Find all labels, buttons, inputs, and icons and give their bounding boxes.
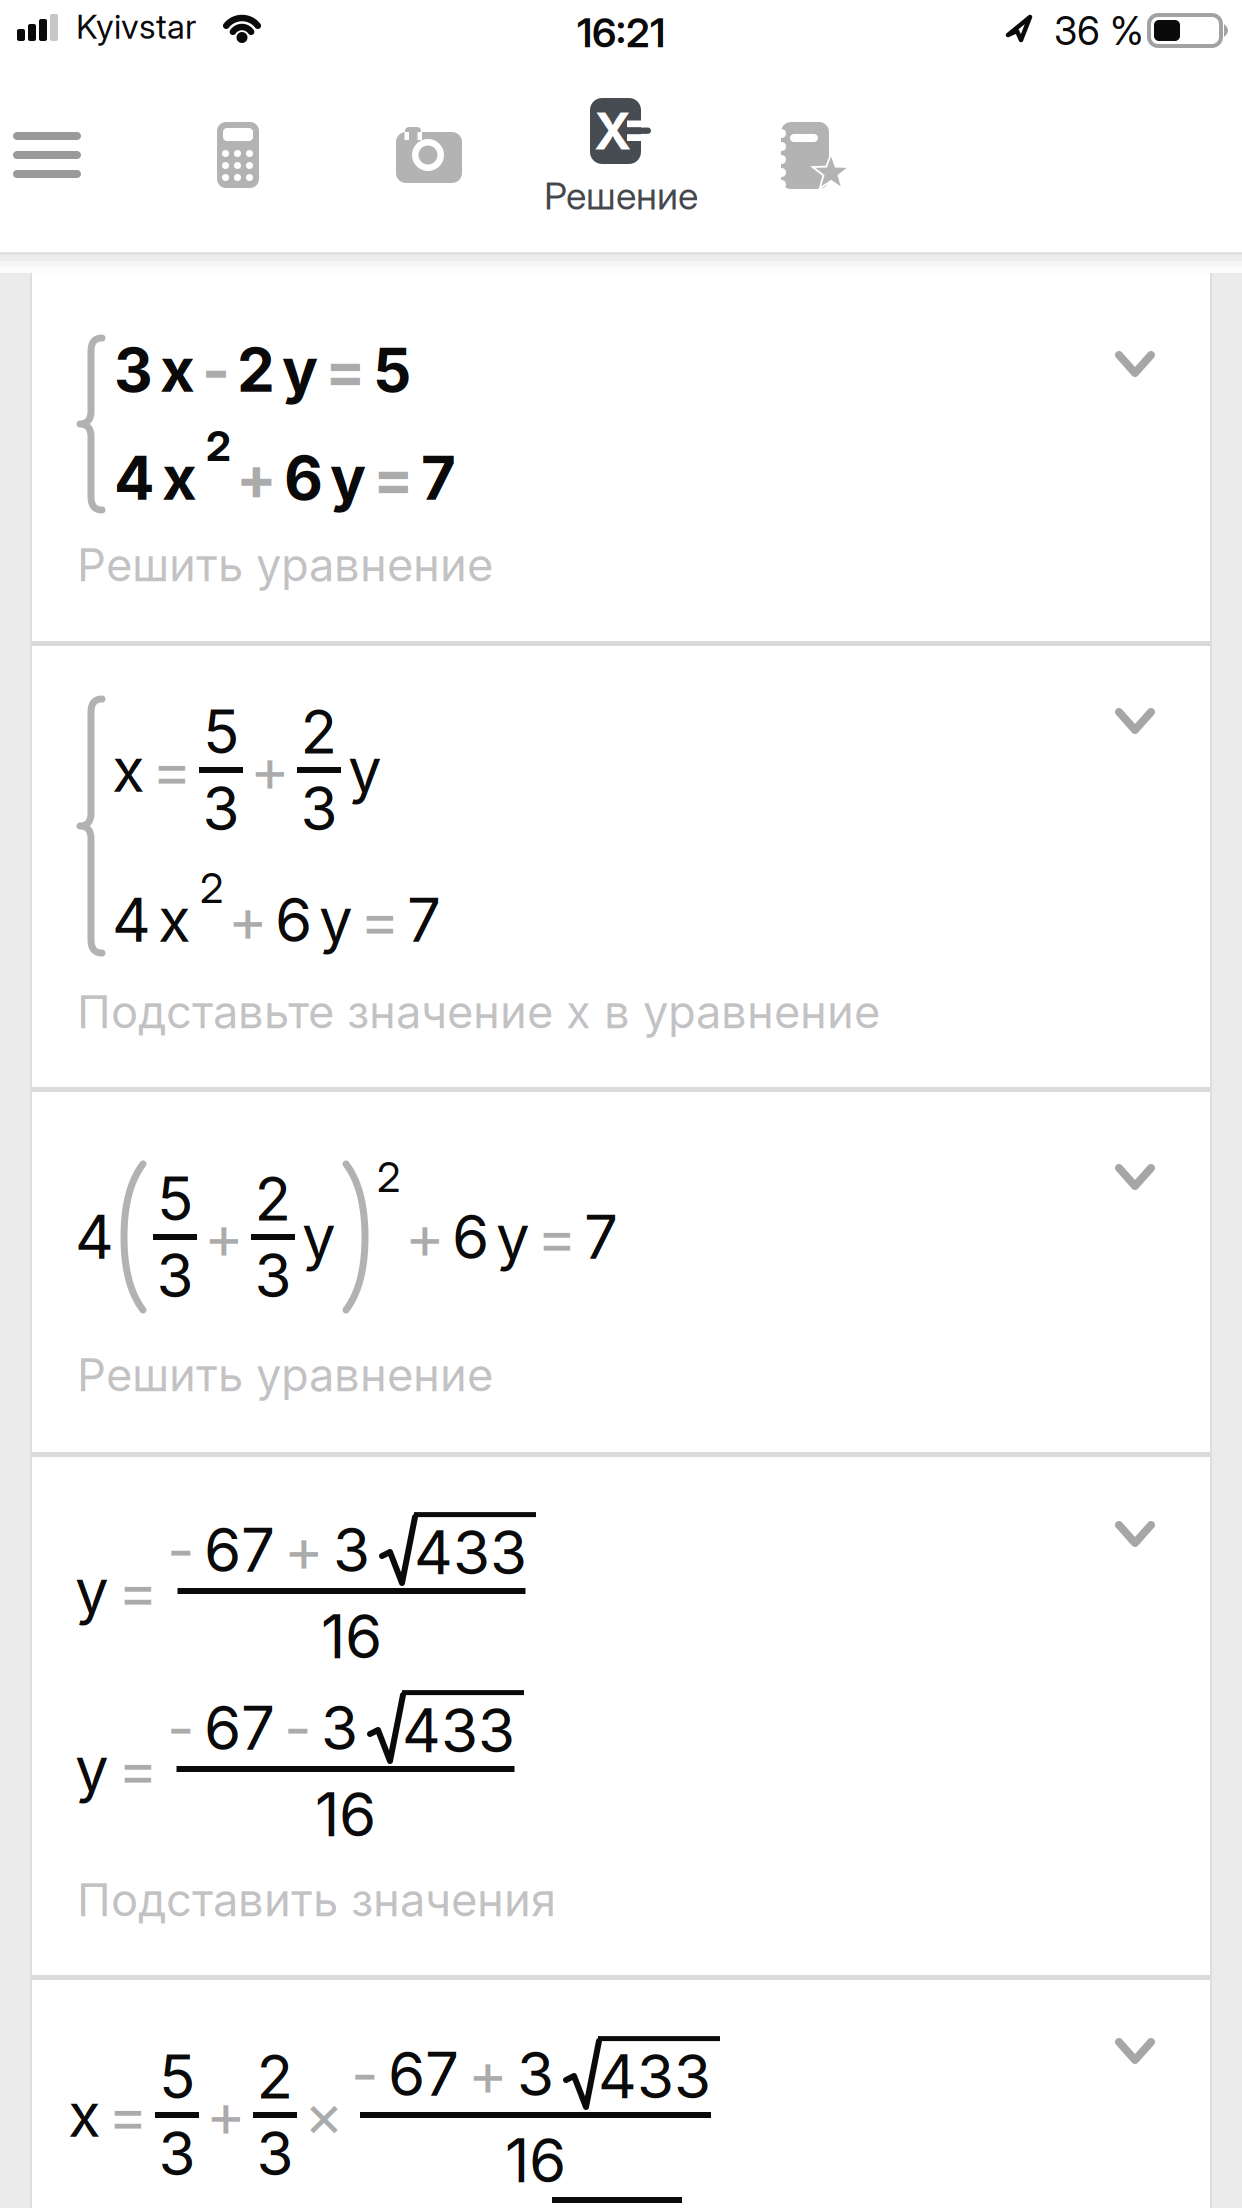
staticText: = bbox=[325, 335, 366, 405]
staticText: × bbox=[304, 2080, 344, 2150]
staticText: Подставьте значение x в уравнение bbox=[77, 985, 880, 1038]
staticText: 2 bbox=[256, 2041, 293, 2112]
staticText: = bbox=[360, 885, 400, 955]
staticText: y bbox=[496, 1202, 530, 1272]
staticText: 3 bbox=[333, 1515, 370, 1585]
button[interactable]: Expand step bbox=[1115, 1521, 1155, 1548]
staticText: x bbox=[158, 885, 191, 955]
staticText: - bbox=[351, 2039, 379, 2109]
staticText: - bbox=[284, 1693, 312, 1763]
staticText: 433 bbox=[402, 1695, 515, 1766]
staticText: + bbox=[250, 735, 290, 805]
staticText: - bbox=[202, 335, 230, 405]
staticText: = bbox=[373, 443, 414, 513]
staticText: 433 bbox=[598, 2041, 711, 2112]
staticText: 5 bbox=[157, 1163, 193, 1234]
staticText: Решить уравнение bbox=[77, 538, 493, 591]
staticText: 5 bbox=[203, 696, 239, 767]
staticText: + bbox=[405, 1202, 445, 1272]
staticText: 4 bbox=[75, 1202, 114, 1272]
button[interactable]: Expand step bbox=[1115, 2038, 1155, 2065]
staticText: 5 bbox=[373, 335, 411, 405]
staticText: 16 bbox=[315, 1779, 376, 1850]
staticText: 3 bbox=[254, 1240, 291, 1311]
staticText: 7 bbox=[421, 443, 456, 513]
staticText: = bbox=[118, 1556, 158, 1626]
staticText: y bbox=[348, 735, 382, 805]
staticText: 4 bbox=[114, 443, 155, 513]
staticText: 6 bbox=[284, 443, 323, 513]
staticText: 16 bbox=[505, 2125, 566, 2196]
staticText: x bbox=[112, 735, 145, 805]
staticText: 3 bbox=[202, 773, 239, 844]
staticText: 67 bbox=[388, 2039, 459, 2109]
staticText: 7 bbox=[407, 885, 441, 955]
button[interactable]: Camera bbox=[396, 127, 462, 183]
staticText: = bbox=[108, 2080, 148, 2150]
button[interactable]: Menu bbox=[4, 120, 90, 190]
staticText: 36 % bbox=[1054, 8, 1144, 54]
staticText: 16 bbox=[321, 1601, 382, 1672]
staticText: + bbox=[468, 2039, 508, 2109]
staticText: y bbox=[319, 885, 353, 955]
staticText: x bbox=[68, 2080, 101, 2150]
staticText: 5 bbox=[159, 2041, 195, 2112]
staticText: 3 bbox=[256, 2118, 293, 2189]
staticText: 2 bbox=[300, 696, 337, 767]
staticText: - bbox=[167, 1693, 195, 1763]
staticText: y bbox=[75, 1734, 109, 1804]
staticText: 3 bbox=[321, 1693, 358, 1763]
staticText: 2 bbox=[377, 1153, 400, 1201]
staticText: 3 bbox=[114, 335, 153, 405]
staticText: x bbox=[162, 443, 197, 513]
staticText: = bbox=[152, 735, 192, 805]
staticText: + bbox=[284, 1515, 324, 1585]
button[interactable]: Expand step bbox=[1115, 1164, 1155, 1191]
button[interactable]: Notebook bbox=[777, 122, 855, 195]
staticText: 67 bbox=[204, 1693, 275, 1763]
staticText: + bbox=[206, 2080, 246, 2150]
staticText: 4 bbox=[112, 885, 151, 955]
button[interactable]: Expand step bbox=[1115, 351, 1155, 378]
staticText: Решение bbox=[544, 174, 698, 218]
staticText: 7 bbox=[584, 1202, 618, 1272]
staticText: y bbox=[330, 443, 366, 513]
staticText: 3 bbox=[517, 2039, 554, 2109]
staticText: = bbox=[537, 1202, 577, 1272]
staticText: = bbox=[118, 1734, 158, 1804]
staticText: Kyivstar bbox=[76, 7, 196, 46]
staticText: + bbox=[204, 1202, 244, 1272]
staticText: 2 bbox=[237, 335, 275, 405]
staticText: 2 bbox=[254, 1163, 291, 1234]
staticText: 6 bbox=[452, 1202, 489, 1272]
staticText: Решить уравнение bbox=[77, 1348, 493, 1401]
button[interactable]: Expand step bbox=[1115, 708, 1155, 735]
staticText: 2 bbox=[200, 864, 223, 912]
staticText: 2 bbox=[206, 422, 231, 470]
staticText: + bbox=[236, 443, 277, 513]
staticText: 3 bbox=[158, 2118, 195, 2189]
staticText: y bbox=[75, 1556, 109, 1626]
staticText: + bbox=[228, 885, 268, 955]
staticText: 433 bbox=[414, 1517, 527, 1588]
staticText: Подставить значения bbox=[77, 1873, 556, 1926]
button[interactable]: Solution bbox=[471, 98, 771, 218]
staticText: y bbox=[282, 335, 318, 405]
staticText: 16:21 bbox=[577, 9, 665, 56]
staticText: 67 bbox=[204, 1515, 275, 1585]
staticText: x bbox=[160, 335, 195, 405]
button[interactable]: Calculator bbox=[217, 122, 259, 188]
staticText: 3 bbox=[156, 1240, 193, 1311]
staticText: X bbox=[594, 101, 631, 161]
staticText: - bbox=[167, 1515, 195, 1585]
staticText: 3 bbox=[300, 773, 337, 844]
staticText: 6 bbox=[275, 885, 312, 955]
staticText: y bbox=[302, 1202, 336, 1272]
